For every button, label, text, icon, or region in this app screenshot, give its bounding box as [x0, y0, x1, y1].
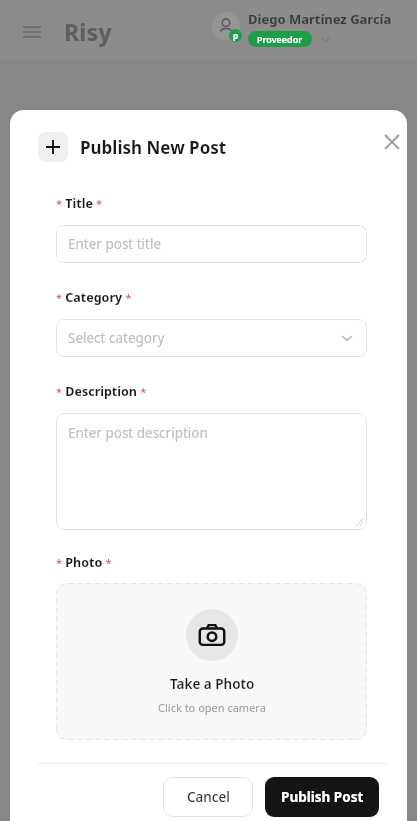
staticText: * Title *: [56, 195, 103, 212]
staticText: Select category: [68, 329, 165, 347]
button[interactable]: Publish Post: [265, 777, 379, 817]
staticText: p: [233, 30, 239, 41]
staticText: * Category *: [56, 289, 132, 306]
staticText: Publish Post: [281, 788, 364, 806]
staticText: Take a Photo: [170, 675, 255, 693]
staticText: Risy: [64, 16, 112, 47]
button[interactable]: Close: [378, 128, 406, 156]
staticText: Proveedor: [257, 33, 303, 45]
staticText: * Description *: [56, 383, 147, 400]
staticText: Diego Martínez García: [248, 10, 392, 28]
button[interactable]: Enter post title: [56, 225, 367, 263]
button[interactable]: Cancel: [163, 777, 253, 817]
staticText: Click to open camera: [158, 700, 266, 715]
staticText: Enter post description: [68, 424, 208, 442]
staticText: Cancel: [187, 788, 230, 806]
staticText: * Photo *: [56, 554, 112, 571]
button[interactable]: Enter post description: [56, 413, 367, 530]
staticText: Publish New Post: [80, 136, 227, 159]
staticText: Enter post title: [68, 235, 162, 253]
button[interactable]: Menu: [20, 20, 44, 44]
button[interactable]: Take a Photo: [56, 583, 367, 740]
button[interactable]: Select category: [56, 319, 367, 357]
